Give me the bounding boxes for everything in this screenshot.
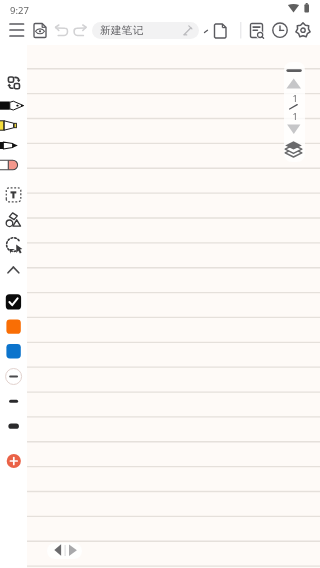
button[interactable]: Thick stroke [2, 415, 25, 437]
button[interactable]: 新建笔记 [92, 22, 199, 39]
button[interactable]: New page [209, 21, 231, 43]
button[interactable]: Redo [71, 21, 90, 40]
button[interactable]: Orange colour [2, 316, 25, 338]
button[interactable]: Pen [2, 135, 25, 157]
button[interactable]: Thin stroke [2, 390, 25, 412]
button[interactable]: Lasso select [2, 235, 25, 257]
button[interactable]: Previous page [284, 77, 305, 91]
button[interactable]: Fountain pen [2, 95, 25, 117]
staticText: 1 [292, 92, 298, 104]
button[interactable]: Eraser [2, 154, 25, 176]
button[interactable]: Add [2, 450, 25, 472]
button[interactable]: Preview [29, 21, 51, 43]
staticText: 1 [292, 110, 298, 122]
button[interactable]: History [269, 21, 291, 43]
button[interactable]: Shapes [2, 209, 25, 231]
button[interactable]: Search notes [246, 21, 268, 43]
button[interactable]: Previous page [47, 543, 64, 559]
button[interactable]: Undo [52, 21, 71, 40]
button[interactable]: Next page [64, 543, 81, 559]
staticText: 9:27 [10, 4, 29, 17]
button[interactable]: Transform [2, 72, 25, 94]
button[interactable]: Layers [284, 136, 305, 160]
button[interactable]: Menu [5, 21, 29, 45]
button[interactable]: Blue colour [2, 340, 25, 362]
button[interactable]: More colours [2, 366, 25, 388]
button[interactable]: Settings [292, 21, 314, 43]
staticText: 新建笔记 [100, 24, 144, 38]
button[interactable]: Collapse [2, 259, 25, 281]
button[interactable]: Text tool [2, 184, 25, 206]
button[interactable]: Highlighter [2, 115, 25, 137]
button[interactable]: Next page [284, 122, 305, 136]
button[interactable]: Black colour [2, 291, 25, 313]
